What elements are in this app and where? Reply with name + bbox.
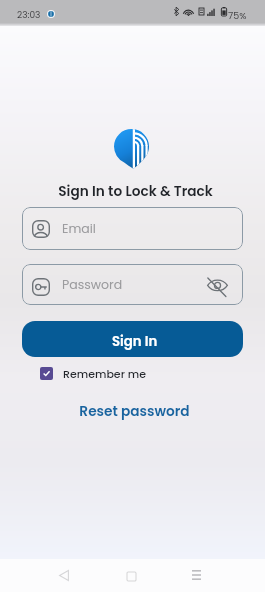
button[interactable]: Remember me (40, 366, 146, 381)
staticText: Email (62, 220, 96, 237)
button[interactable]: Email (22, 207, 243, 250)
staticText: Sign In to Lock & Track (3, 182, 265, 201)
staticText: Remember me (63, 366, 146, 381)
staticText: Password (62, 276, 123, 293)
button[interactable]: Show password (204, 273, 228, 297)
button[interactable]: Recent apps (180, 559, 212, 591)
staticText: 23:03 (17, 9, 41, 22)
staticText: 75% (228, 9, 247, 22)
button[interactable]: Password (22, 264, 243, 305)
button[interactable]: Back (48, 559, 80, 591)
button[interactable]: Sign In (22, 321, 243, 357)
button[interactable]: Home (115, 560, 147, 592)
staticText: Sign In (112, 332, 158, 351)
button[interactable]: Reset password (2, 402, 265, 421)
